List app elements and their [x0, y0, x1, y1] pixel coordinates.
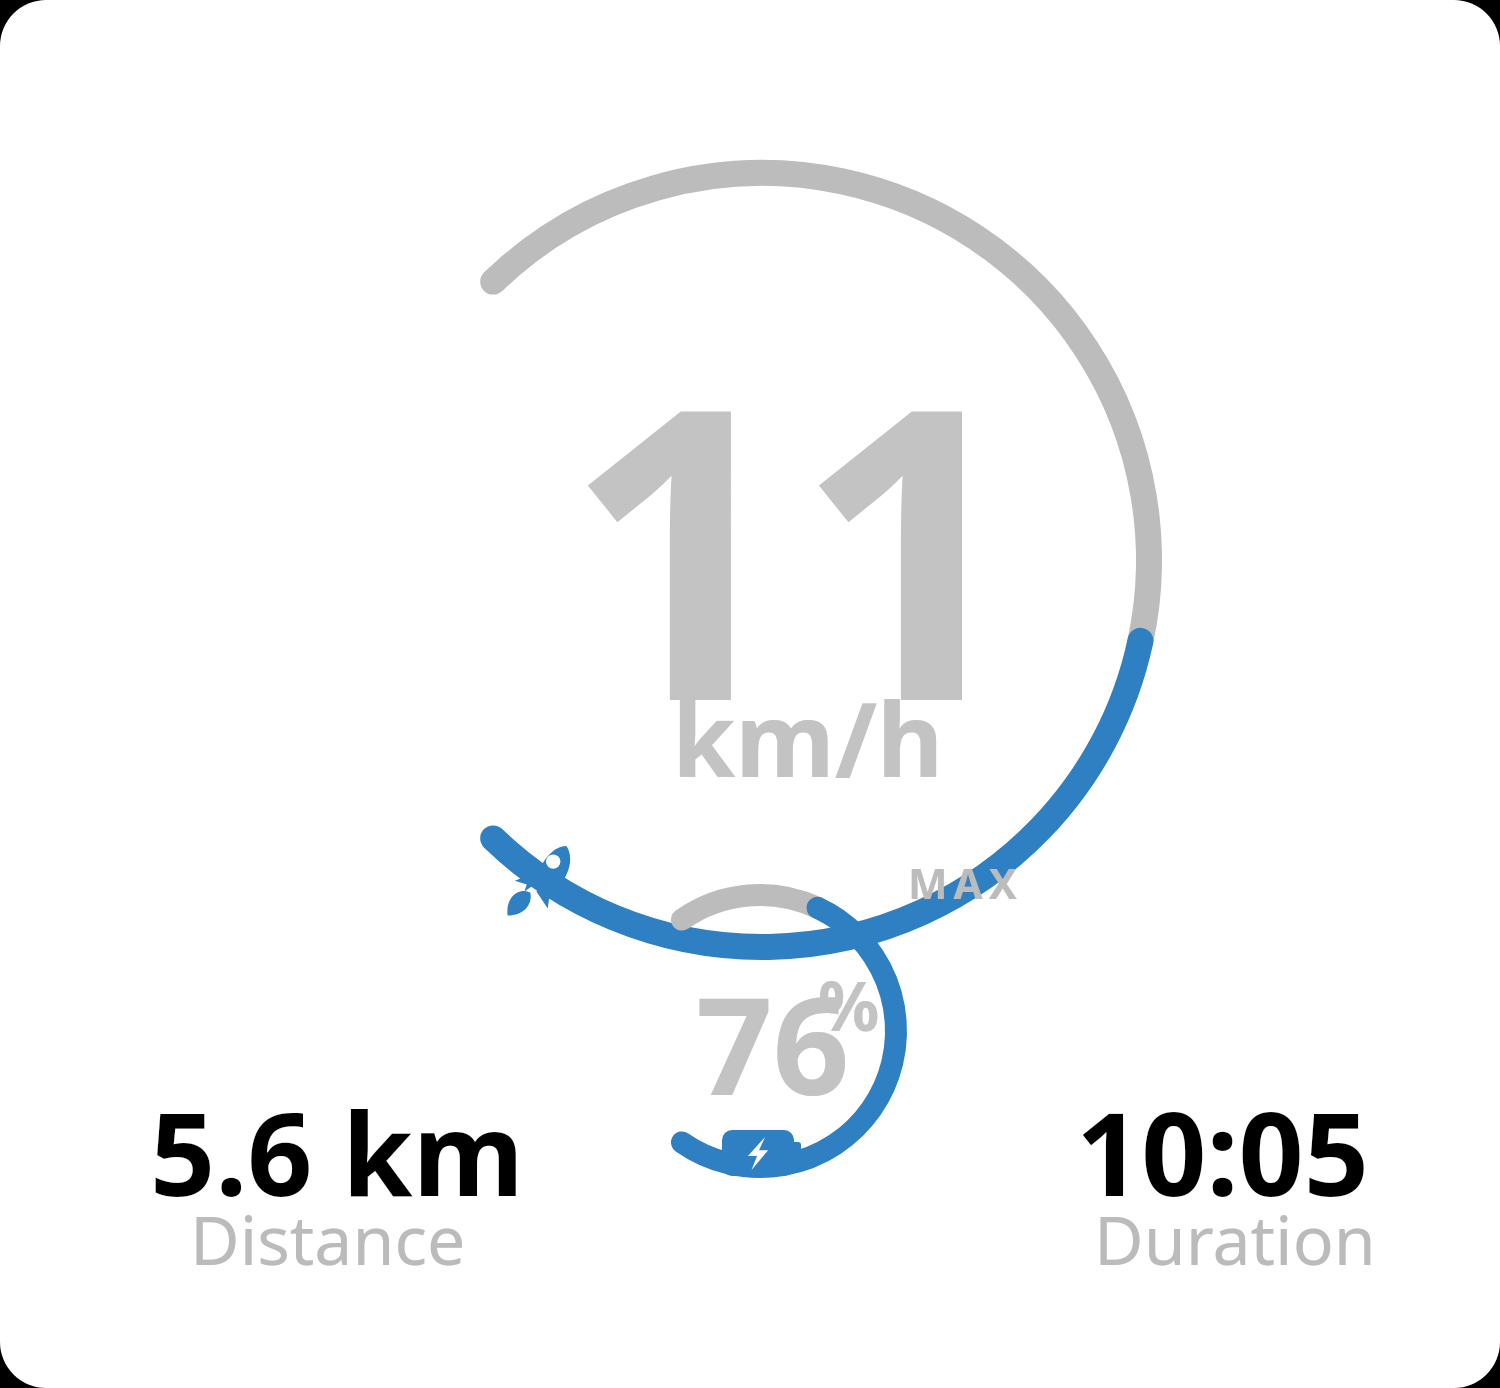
button[interactable]: 10:05	[1076, 1074, 1369, 1229]
staticText: MAX	[908, 854, 1023, 911]
other: Workout speed and battery gauges	[0, 0, 1500, 1388]
button[interactable]: 5.6 km	[150, 1074, 524, 1229]
staticText: Duration	[1094, 1192, 1376, 1285]
staticText: %	[818, 958, 880, 1051]
staticText: Distance	[190, 1192, 466, 1285]
staticText: km/h	[672, 668, 944, 807]
button[interactable]: 76	[696, 952, 850, 1135]
button[interactable]: 11	[564, 268, 1027, 818]
